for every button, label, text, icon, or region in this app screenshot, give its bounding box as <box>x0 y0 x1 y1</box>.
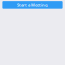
staticText: Start a Meeting <box>17 2 48 7</box>
button[interactable]: Start a Meeting <box>2 1 63 9</box>
